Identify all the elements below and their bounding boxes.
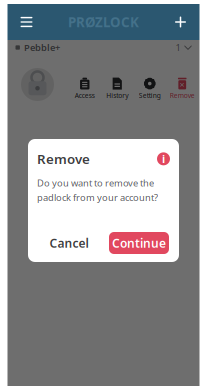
button[interactable]: Cancel [38,232,100,254]
staticText: PRØZLOCK [68,13,139,31]
button[interactable]: ✕ [166,73,198,103]
button[interactable]: History [101,73,133,103]
staticText: 1 [175,41,180,54]
staticText: Continue [112,235,166,251]
button[interactable]: Add padlock [167,7,193,37]
button[interactable]: Continue [109,232,169,254]
staticText: Pebble+ [24,41,60,54]
staticText: padlock from your account? [37,191,158,203]
button[interactable]: Access [68,73,101,103]
staticText: Do you want to remove the [37,177,154,189]
staticText: Access [75,91,95,100]
button[interactable]: Menu [13,7,39,37]
staticText: i [162,152,165,166]
staticText: Remove [37,150,90,168]
button[interactable]: Setting [133,73,166,103]
staticText: Cancel [49,235,88,251]
staticText: History [106,91,128,100]
staticText: Remove [170,91,195,100]
staticText: Setting [139,91,161,100]
staticText: ✕ [179,81,185,89]
